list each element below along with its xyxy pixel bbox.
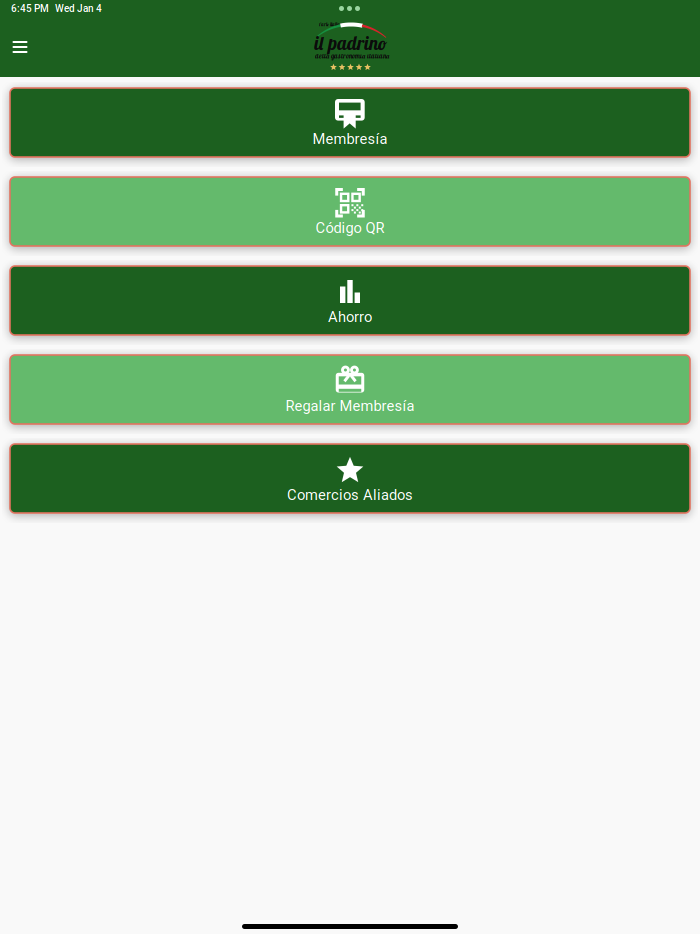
button[interactable]: Regalar Membresía — [10, 355, 690, 424]
button[interactable]: Comercios Aliados — [10, 444, 690, 513]
button[interactable]: Ahorro — [10, 266, 690, 335]
staticText: 6:45 PM Wed Jan 4 — [11, 3, 102, 14]
staticText: l'arte italiana — [319, 21, 345, 27]
staticText: Código QR — [315, 219, 384, 237]
button[interactable]: Membresía — [10, 88, 690, 157]
button[interactable]: Código QR — [10, 177, 690, 246]
staticText: Regalar Membresía — [285, 397, 414, 415]
button[interactable]: Menu — [2, 30, 38, 64]
staticText: della gastronomia italiana — [315, 52, 390, 60]
staticText: Membresía — [312, 130, 387, 148]
staticText: Ahorro — [328, 308, 372, 326]
staticText: il padrino — [314, 31, 387, 55]
staticText: Comercios Aliados — [287, 486, 413, 504]
